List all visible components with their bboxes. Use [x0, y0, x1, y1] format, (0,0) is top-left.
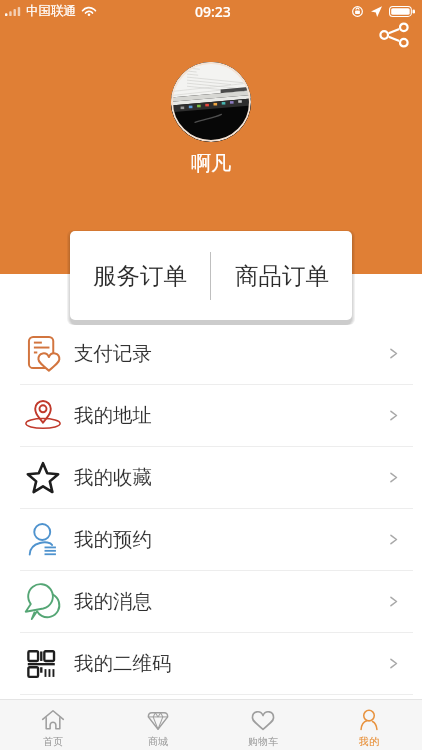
staticText: 我的预约	[74, 527, 152, 552]
button[interactable]: 购物车	[210, 709, 316, 750]
button[interactable]: 服务订单	[70, 231, 210, 320]
staticText: 商城	[148, 735, 168, 748]
staticText: 我的	[359, 735, 379, 748]
button[interactable]: 首页	[0, 709, 105, 750]
button[interactable]: 支付记录	[0, 323, 422, 384]
button[interactable]: 我的收藏	[0, 447, 422, 508]
button[interactable]: 我的地址	[0, 385, 422, 446]
button[interactable]: 我的二维码	[0, 633, 422, 694]
staticText: 啊凡	[191, 151, 231, 176]
button[interactable]: 我的消息	[0, 571, 422, 632]
button[interactable]: 商品订单	[211, 231, 352, 320]
staticText: 购物车	[248, 735, 278, 748]
button[interactable]: 我的预约	[0, 509, 422, 570]
button[interactable]: 商城	[105, 709, 210, 750]
staticText: 09:23	[195, 2, 231, 21]
staticText: 我的收藏	[74, 465, 152, 490]
staticText: 我的二维码	[74, 651, 172, 676]
staticText: 商品订单	[235, 261, 329, 291]
button[interactable]: 我的	[316, 709, 422, 750]
button[interactable]: Share	[379, 20, 409, 50]
staticText: 我的消息	[74, 589, 152, 614]
staticText: 首页	[43, 735, 63, 748]
staticText: 支付记录	[74, 341, 152, 366]
staticText: 服务订单	[93, 261, 187, 291]
staticText: 中国联通	[26, 3, 76, 19]
staticText: 我的地址	[74, 403, 152, 428]
